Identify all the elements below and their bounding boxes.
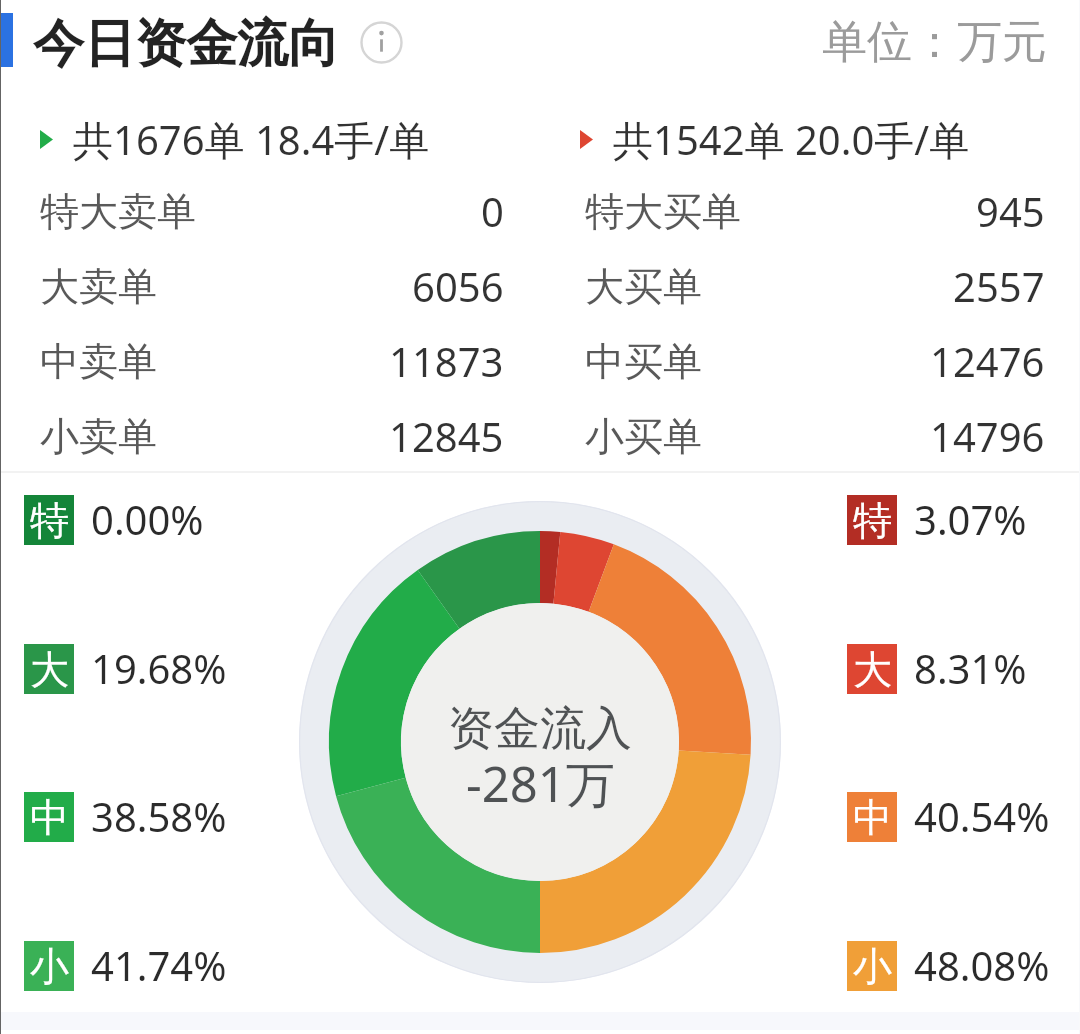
staticText: 特大卖单 — [40, 187, 196, 236]
staticText: 今日资金流向 — [33, 12, 339, 76]
staticText: 单位：万元 — [822, 14, 1047, 66]
staticText: 中卖单 — [40, 337, 157, 386]
staticText: 38.58% — [91, 789, 227, 839]
button[interactable]: 中 — [24, 792, 227, 842]
button[interactable]: 大买单 — [585, 258, 1045, 314]
staticText: 8.31% — [914, 641, 1027, 691]
staticText: 特大买单 — [585, 187, 741, 236]
button[interactable]: 小 — [847, 941, 1050, 991]
button[interactable]: 中买单 — [585, 333, 1045, 389]
staticText: 12845 — [389, 409, 504, 463]
staticText: 共1676单 18.4手/单 — [73, 112, 430, 167]
staticText: 41.74% — [91, 938, 227, 988]
button[interactable]: 小 — [24, 941, 227, 991]
button[interactable]: 中 — [847, 792, 1050, 842]
button[interactable]: 共1542单 20.0手/单 — [580, 110, 970, 168]
staticText: 中买单 — [585, 337, 702, 386]
staticText: 中 — [30, 793, 69, 842]
staticText: 48.08% — [914, 938, 1050, 988]
button[interactable]: 特 — [847, 495, 1027, 545]
button[interactable]: 说明 — [360, 21, 403, 64]
staticText: 0 — [481, 184, 504, 238]
staticText: 资金流入 — [448, 700, 632, 758]
staticText: 19.68% — [91, 641, 227, 691]
staticText: 11873 — [389, 334, 504, 388]
staticText: 6056 — [412, 259, 504, 313]
staticText: 大 — [853, 645, 892, 694]
button[interactable]: 共1676单 18.4手/单 — [40, 110, 430, 168]
button[interactable]: 小买单 — [585, 408, 1045, 464]
button[interactable]: 单位：万元 — [780, 14, 1047, 66]
staticText: 945 — [976, 184, 1045, 238]
staticText: 14796 — [930, 409, 1045, 463]
button[interactable]: 特 — [24, 495, 204, 545]
staticText: 2557 — [953, 259, 1045, 313]
button[interactable]: 今日资金流向 — [33, 12, 339, 76]
staticText: 大买单 — [585, 262, 702, 311]
button[interactable]: 小卖单 — [40, 408, 504, 464]
staticText: 大卖单 — [40, 262, 157, 311]
staticText: 小 — [30, 942, 69, 991]
staticText: 小卖单 — [40, 412, 157, 461]
button[interactable]: 特大买单 — [585, 183, 1045, 239]
staticText: 共1542单 20.0手/单 — [613, 112, 970, 167]
staticText: 3.07% — [914, 492, 1027, 542]
button[interactable]: 大 — [24, 644, 227, 694]
staticText: 大 — [30, 645, 69, 694]
button[interactable]: 大卖单 — [40, 258, 504, 314]
staticText: 中 — [853, 793, 892, 842]
staticText: 特 — [30, 496, 69, 545]
button[interactable]: 中卖单 — [40, 333, 504, 389]
staticText: 特 — [853, 496, 892, 545]
staticText: 小买单 — [585, 412, 702, 461]
button[interactable]: 特大卖单 — [40, 183, 504, 239]
staticText: -281万 — [466, 750, 615, 817]
staticText: 12476 — [930, 334, 1045, 388]
staticText: 小 — [853, 942, 892, 991]
staticText: 0.00% — [91, 492, 204, 542]
button[interactable]: 大 — [847, 644, 1027, 694]
staticText: 40.54% — [914, 789, 1050, 839]
